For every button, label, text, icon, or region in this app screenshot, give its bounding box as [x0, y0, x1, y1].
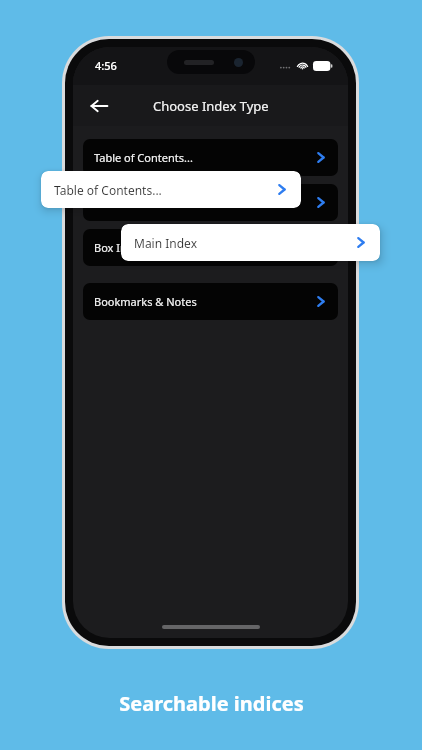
button[interactable]: Main Index [83, 184, 338, 221]
staticText: Table of Contents... [94, 150, 193, 165]
button[interactable]: Main Index [121, 224, 380, 261]
staticText: Table of Contents... [54, 182, 162, 198]
staticText: Bookmarks & Notes [94, 294, 197, 309]
button[interactable]: Box Index [83, 229, 338, 266]
button[interactable]: Table of Contents... [83, 139, 338, 176]
button[interactable]: Table of Contents... [41, 171, 301, 208]
staticText: Searchable indices [119, 690, 304, 717]
staticText: 4:56 [95, 58, 117, 73]
staticText: Main Index [94, 195, 152, 210]
staticText: Box Index [94, 240, 146, 255]
staticText: Choose Index Type [153, 97, 269, 115]
button[interactable]: Back [82, 89, 116, 123]
staticText: Main Index [134, 235, 197, 251]
button[interactable]: Bookmarks & Notes [83, 283, 338, 320]
